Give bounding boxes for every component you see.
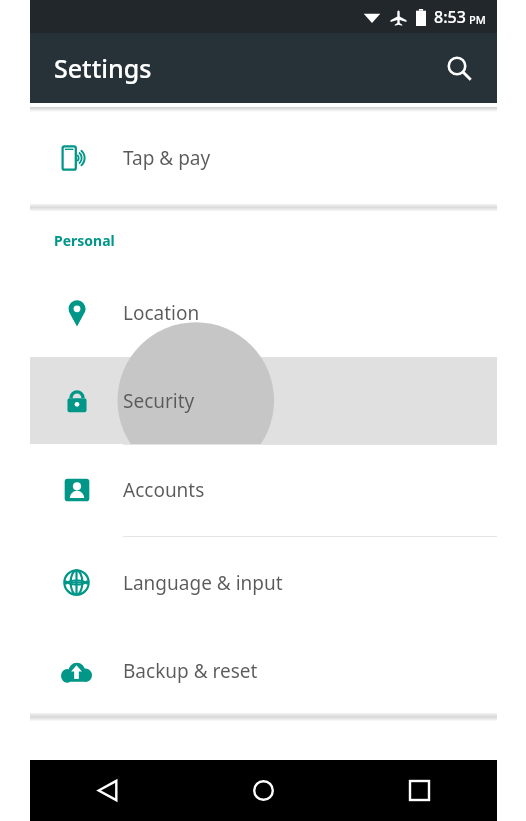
button[interactable]: Tap & pay xyxy=(30,112,497,204)
staticText: Personal xyxy=(54,231,115,250)
staticText: Tap & pay xyxy=(123,145,211,171)
button[interactable]: Security xyxy=(30,357,497,444)
button[interactable]: Backup & reset xyxy=(30,629,497,713)
button[interactable]: Home xyxy=(185,760,341,821)
button[interactable]: Accounts xyxy=(30,444,497,536)
button[interactable]: Recent apps xyxy=(341,760,497,821)
staticText: Location xyxy=(123,300,200,326)
staticText: Security xyxy=(123,388,195,414)
staticText: Accounts xyxy=(123,477,205,503)
staticText: PM xyxy=(469,12,486,27)
staticText: Language & input xyxy=(123,570,283,596)
staticText: Backup & reset xyxy=(123,658,258,684)
button[interactable]: Search xyxy=(435,44,483,92)
staticText: 8:53 xyxy=(434,6,466,28)
button[interactable]: Back xyxy=(30,760,185,821)
staticText: Settings xyxy=(54,51,152,85)
button[interactable]: Language & input xyxy=(30,536,497,629)
button[interactable]: Location xyxy=(30,269,497,357)
